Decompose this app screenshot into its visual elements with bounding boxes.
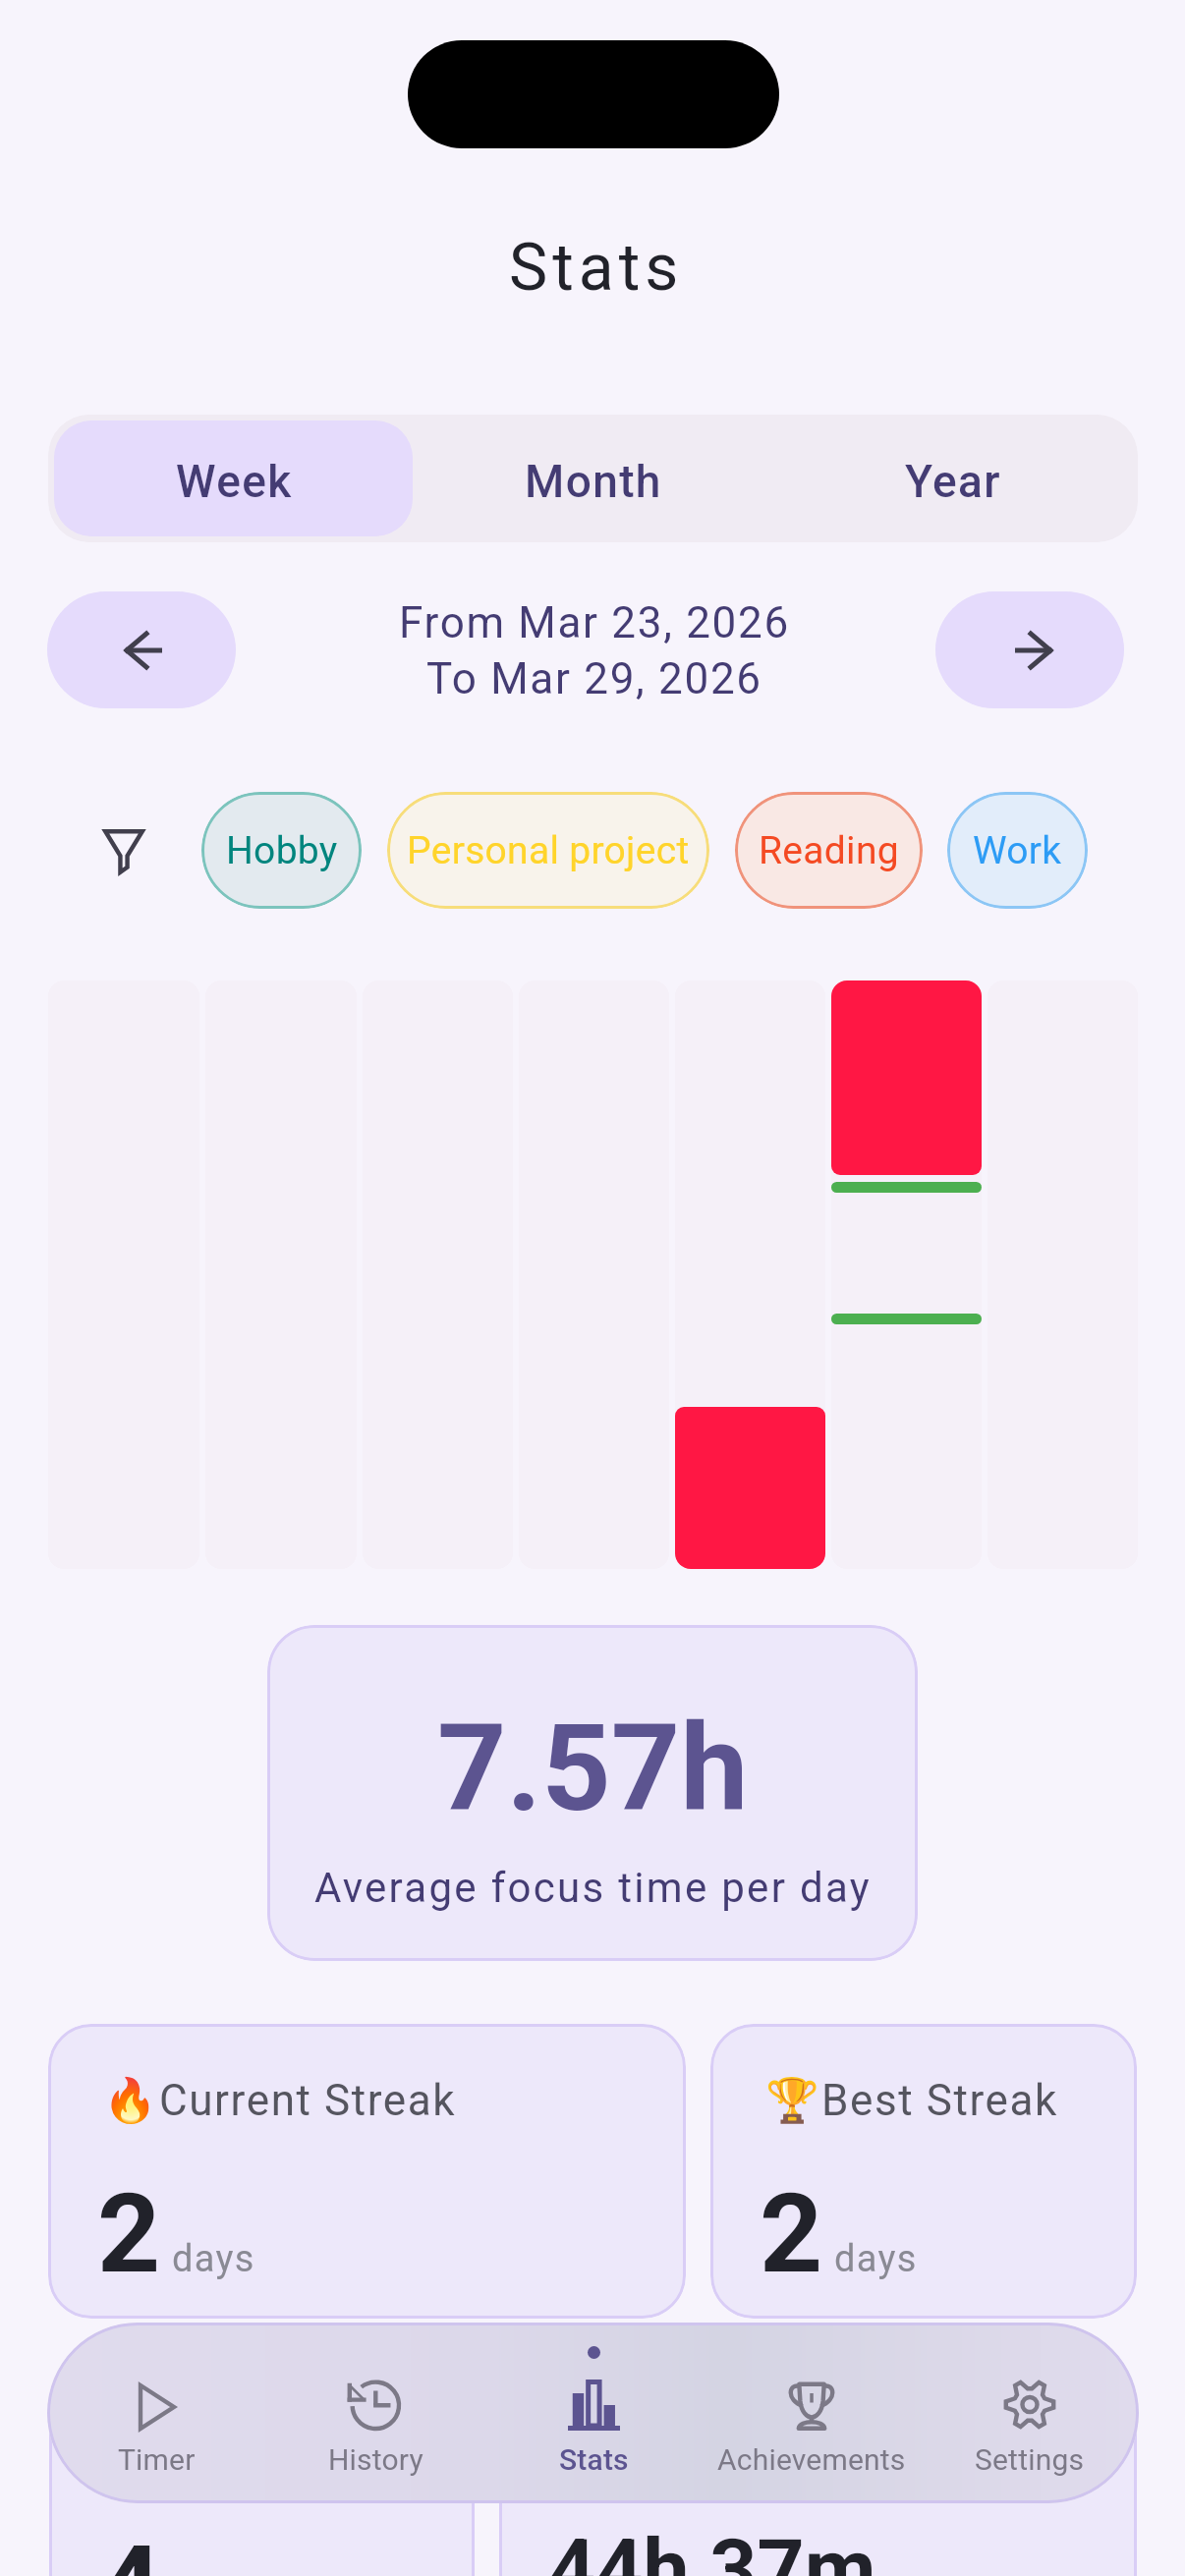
staticText: Stats bbox=[559, 2442, 629, 2477]
staticText: Average focus time per day bbox=[314, 1864, 872, 1912]
button[interactable]: Next week bbox=[935, 591, 1124, 708]
button[interactable]: Timer bbox=[47, 2323, 266, 2503]
button[interactable]: Filter categories bbox=[103, 829, 144, 873]
staticText: From Mar 23, 2026 bbox=[399, 597, 790, 648]
staticText: Total focus bbox=[610, 2427, 844, 2478]
staticText: ✅ bbox=[104, 2427, 158, 2478]
staticText: Timer bbox=[118, 2442, 196, 2477]
staticText: 2 bbox=[97, 2169, 161, 2298]
staticText: Current Streak bbox=[159, 2075, 457, 2126]
staticText: To Mar 29, 2026 bbox=[426, 653, 762, 704]
staticText: Work bbox=[973, 828, 1062, 873]
staticText: 2 bbox=[760, 2169, 823, 2298]
button[interactable]: 🏆 bbox=[710, 2024, 1137, 2319]
staticText: Personal project bbox=[407, 828, 690, 873]
staticText: Month bbox=[525, 455, 662, 508]
button[interactable]: 7.57h bbox=[267, 1625, 918, 1961]
staticText: 7.57h bbox=[437, 1698, 749, 1839]
staticText: Reading bbox=[759, 828, 899, 873]
button[interactable]: Reading bbox=[735, 792, 923, 909]
button[interactable]: 🔥 bbox=[48, 2024, 686, 2319]
staticText: ⏱️ bbox=[554, 2427, 608, 2478]
staticText: 44h 37m bbox=[548, 2521, 876, 2576]
staticText: Sessions bbox=[160, 2427, 348, 2478]
staticText: days bbox=[172, 2237, 255, 2281]
button[interactable]: Year bbox=[772, 420, 1132, 536]
staticText: 4 bbox=[98, 2521, 162, 2576]
staticText: History bbox=[328, 2442, 423, 2477]
button[interactable]: Achievements bbox=[703, 2323, 921, 2503]
button[interactable]: Stats bbox=[484, 2323, 703, 2503]
staticText: 🏆 bbox=[765, 2075, 819, 2126]
staticText: Year bbox=[905, 455, 1001, 508]
staticText: Hobby bbox=[226, 828, 338, 873]
staticText: 🔥 bbox=[103, 2075, 157, 2126]
button[interactable]: Personal project bbox=[387, 792, 709, 909]
staticText: Settings bbox=[975, 2442, 1085, 2477]
staticText: Best Streak bbox=[821, 2075, 1058, 2126]
staticText: Week bbox=[176, 455, 293, 508]
button[interactable]: Work bbox=[947, 792, 1088, 909]
staticText: days bbox=[834, 2237, 918, 2281]
button[interactable]: ⏱️ bbox=[499, 2376, 1137, 2576]
button[interactable]: Week bbox=[54, 420, 413, 536]
staticText: Stats bbox=[509, 230, 684, 306]
button[interactable]: Month bbox=[413, 420, 772, 536]
staticText: Achievements bbox=[717, 2442, 906, 2477]
button[interactable]: Previous week bbox=[47, 591, 236, 708]
button[interactable]: ✅ bbox=[49, 2376, 475, 2576]
button[interactable]: Settings bbox=[921, 2323, 1139, 2503]
button[interactable]: History bbox=[266, 2323, 484, 2503]
button[interactable]: Hobby bbox=[201, 792, 362, 909]
